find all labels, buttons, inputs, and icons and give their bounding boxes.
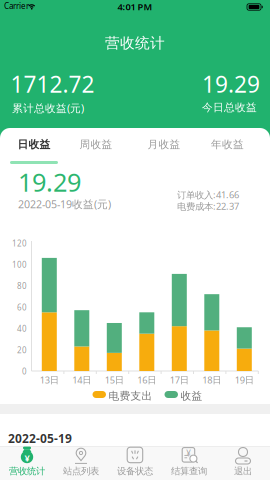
- staticText: ¥: [186, 448, 191, 459]
- staticText: 120: [12, 238, 27, 249]
- button[interactable]: 设备状态: [108, 446, 162, 480]
- staticText: 19.29: [202, 69, 260, 99]
- staticText: 月收益: [147, 138, 180, 151]
- button[interactable]: 站点列表: [54, 446, 108, 480]
- staticText: 2022-05-19收益(元): [18, 197, 111, 211]
- staticText: 15日: [105, 374, 124, 386]
- staticText: 设备状态: [117, 465, 153, 477]
- staticText: 2022-05-19: [8, 430, 72, 446]
- staticText: 0: [22, 366, 27, 377]
- staticText: 营收统计: [105, 34, 165, 52]
- staticText: Carrier: [4, 0, 29, 11]
- staticText: 订单收入:41.66: [177, 188, 239, 201]
- staticText: 19.29: [18, 165, 81, 199]
- staticText: 14日: [72, 374, 91, 386]
- button[interactable]: ¥: [0, 446, 54, 480]
- staticText: 20: [17, 345, 27, 355]
- staticText: 营收统计: [9, 465, 45, 477]
- button[interactable]: 日收益: [3, 129, 65, 159]
- staticText: 19日: [235, 374, 254, 386]
- staticText: 100: [12, 259, 27, 270]
- staticText: 电费支出: [108, 389, 152, 403]
- staticText: 结算查询: [171, 465, 207, 477]
- staticText: 4:01 PM: [117, 0, 152, 13]
- button[interactable]: 周收益: [65, 129, 127, 159]
- button[interactable]: 年收益: [196, 129, 258, 159]
- staticText: 13日: [40, 374, 59, 386]
- staticText: 日收益: [17, 138, 50, 151]
- staticText: 周收益: [79, 138, 112, 151]
- button[interactable]: 退出: [216, 446, 270, 480]
- staticText: 16日: [137, 374, 156, 386]
- staticText: 站点列表: [63, 465, 99, 477]
- staticText: 退出: [234, 465, 252, 477]
- staticText: 18日: [202, 374, 221, 386]
- staticText: 年收益: [211, 138, 244, 151]
- staticText: 40: [17, 323, 27, 334]
- staticText: 今日总收益: [202, 101, 257, 114]
- button[interactable]: 月收益: [133, 129, 195, 159]
- staticText: 收益: [180, 389, 202, 403]
- staticText: 累计总收益(元): [12, 101, 84, 115]
- staticText: 17日: [170, 374, 189, 386]
- button[interactable]: ¥: [162, 446, 216, 480]
- staticText: 60: [17, 302, 27, 313]
- staticText: 1712.72: [10, 69, 94, 99]
- staticText: ¥: [24, 452, 29, 464]
- staticText: 80: [17, 281, 27, 291]
- button[interactable]: 2022-05-19: [0, 414, 270, 447]
- staticText: 电费成本:22.37: [177, 200, 239, 212]
